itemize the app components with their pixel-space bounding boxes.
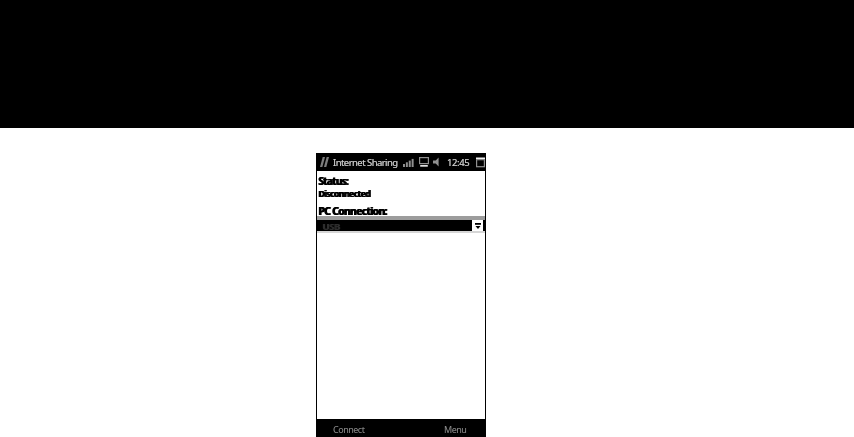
other: Signal strength	[403, 157, 415, 167]
staticText: PC Connection:	[318, 204, 387, 218]
staticText: Disconnected	[318, 187, 370, 199]
other: Volume	[433, 157, 441, 167]
staticText: Status:	[319, 174, 349, 188]
other: Connection	[419, 157, 429, 167]
other: Internet Sharing	[320, 157, 329, 167]
staticText: Connect	[333, 423, 365, 435]
staticText: Disconnected	[318, 187, 370, 199]
staticText: Internet Sharing	[333, 156, 398, 169]
button[interactable]: Connect	[316, 419, 401, 437]
other: Battery	[476, 157, 485, 167]
staticText: Disconnected	[319, 187, 371, 199]
button[interactable]: USB	[316, 216, 486, 236]
staticText: PC Connection:	[319, 204, 388, 218]
button[interactable]: Menu	[401, 419, 486, 437]
staticText: Menu	[444, 423, 467, 435]
staticText: PC Connection:	[319, 204, 388, 218]
staticText: USB	[322, 220, 340, 231]
staticText: 12:45	[447, 156, 470, 169]
staticText: Status:	[318, 174, 348, 188]
staticText: Status:	[318, 174, 348, 188]
staticText: PC Connection:	[318, 204, 387, 218]
staticText: Disconnected	[319, 187, 371, 199]
staticText: USB	[323, 220, 341, 231]
button[interactable]: Open list	[472, 220, 483, 231]
staticText: Status:	[319, 174, 349, 188]
